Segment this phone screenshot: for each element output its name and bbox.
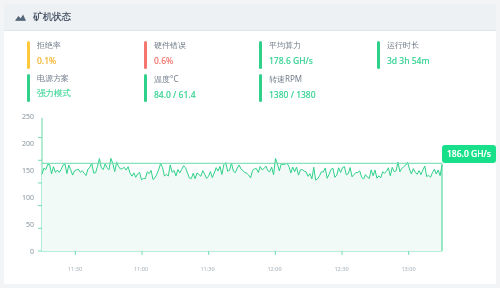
staticText: 11:30 [42, 265, 108, 272]
staticText: 200 [4, 139, 34, 149]
staticText: 100 [4, 193, 34, 203]
staticText: 矿机状态 [33, 11, 71, 23]
staticText: 13:00 [375, 265, 442, 272]
button[interactable]: 平均算力 [259, 40, 377, 69]
other: Miner status [15, 12, 26, 23]
staticText: 平均算力 [269, 40, 301, 50]
button[interactable]: 运行时长 [377, 40, 496, 69]
staticText: 温度°C [154, 73, 179, 84]
button[interactable]: 186.0 GH/s [442, 145, 496, 163]
staticText: 84.0 / 61.4 [154, 89, 196, 101]
staticText: 转速RPM [269, 73, 303, 84]
button[interactable]: 拒绝率 [27, 40, 144, 69]
staticText: 硬件错误 [154, 40, 186, 50]
button[interactable]: 硬件错误 [144, 40, 259, 69]
staticText: 50 [4, 220, 34, 230]
staticText: 0.6% [154, 55, 174, 67]
button[interactable]: 温度°C [144, 73, 259, 102]
staticText: 150 [4, 166, 34, 176]
staticText: 12:30 [308, 265, 375, 272]
staticText: 3d 3h 54m [387, 55, 430, 67]
staticText: 12:00 [241, 265, 308, 272]
staticText: 电源方案 [37, 73, 69, 83]
button[interactable]: 转速RPM [259, 73, 377, 102]
staticText: 拒绝率 [37, 40, 61, 50]
staticText: 运行时长 [387, 40, 419, 50]
staticText: 11:30 [174, 265, 241, 272]
button[interactable]: 电源方案 [27, 73, 144, 102]
staticText: 0.1% [37, 55, 57, 67]
staticText: 178.6 GH/s [269, 55, 313, 67]
staticText: 11:00 [108, 265, 174, 272]
staticText: 250 [4, 112, 34, 122]
staticText: 0 [4, 247, 34, 257]
button[interactable]: Miner status [4, 4, 496, 30]
staticText: 强力模式 [37, 88, 71, 99]
staticText: 186.0 GH/s [447, 148, 491, 160]
staticText: 1380 / 1380 [269, 89, 316, 101]
